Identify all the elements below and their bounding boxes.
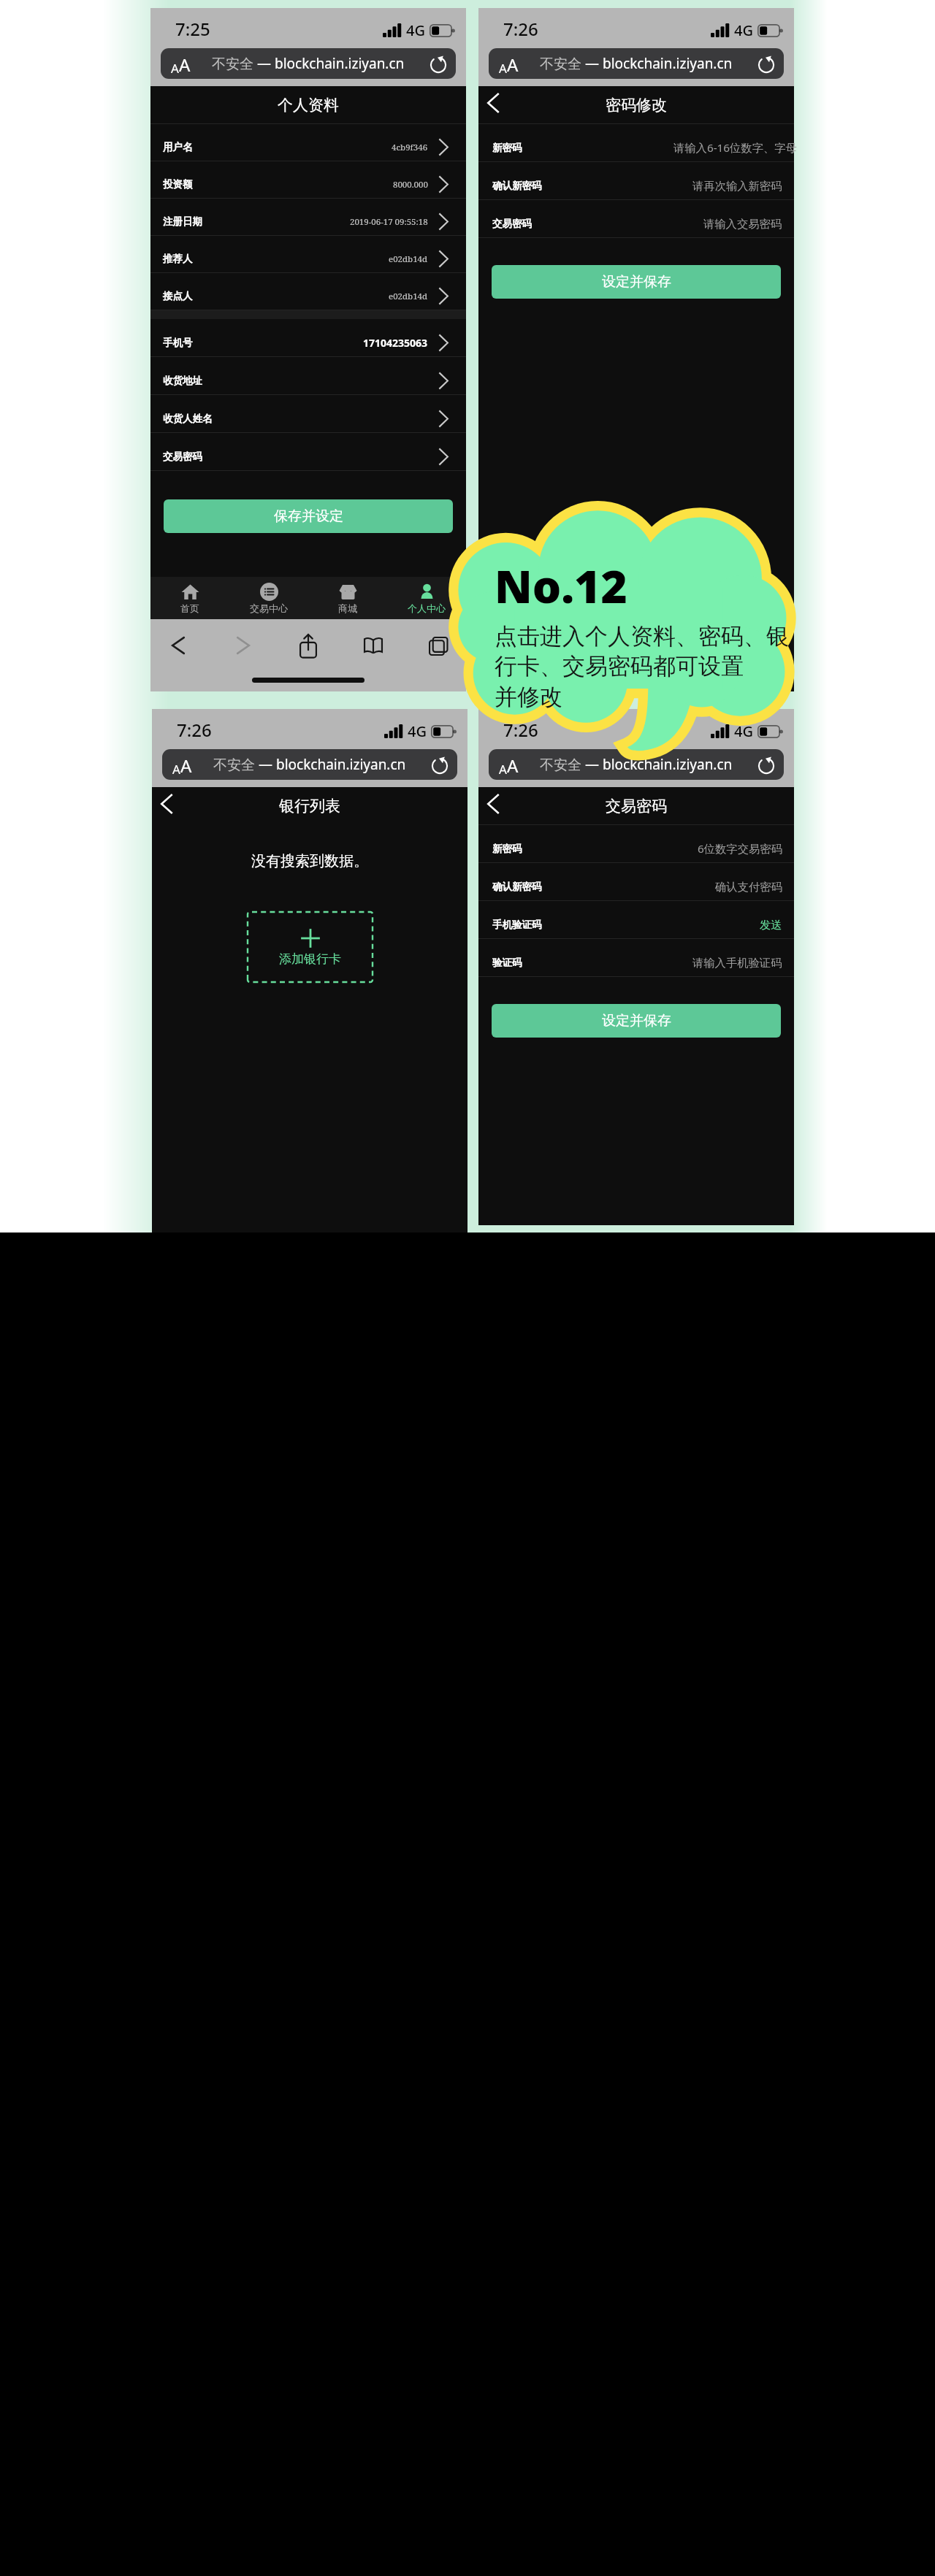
staticText: 添加银行卡 [279, 951, 341, 967]
staticText: A [180, 754, 192, 778]
button[interactable]: 设定并保存 [492, 1004, 781, 1038]
staticText: 7:25 [175, 17, 210, 41]
button[interactable]: 添加银行卡 [248, 912, 373, 982]
staticText: 手机验证码 [492, 919, 542, 931]
button[interactable]: 个人中心 [387, 577, 466, 619]
staticText: A [179, 53, 191, 77]
staticText: — blockchain.iziyan.cn [585, 54, 733, 73]
button[interactable]: A [161, 48, 456, 79]
staticText: 用户名 [163, 141, 193, 153]
staticText: 商城 [338, 602, 357, 614]
staticText: 7:26 [177, 718, 212, 742]
staticText: 新密码 [492, 843, 522, 855]
staticText: e02db14d [389, 253, 428, 265]
staticText: 请输入6-16位数字、字母 [673, 140, 797, 156]
staticText: e02db14d [389, 291, 428, 302]
staticText: 个人中心 [408, 602, 446, 614]
button[interactable]: 首页 [150, 577, 229, 619]
button[interactable]: 手机验证码 [478, 901, 794, 939]
staticText: 交易密码 [492, 218, 532, 230]
button[interactable]: 收货人姓名 [150, 395, 466, 433]
staticText: 设定并保存 [602, 1012, 671, 1030]
staticText: 7:26 [503, 17, 538, 41]
staticText: 个人资料 [278, 96, 339, 115]
button[interactable]: 保存并设定 [164, 499, 453, 533]
button[interactable]: Back [159, 626, 197, 664]
staticText: 2019-06-17 09:55:18 [350, 216, 428, 228]
button[interactable]: Share [289, 626, 327, 664]
button[interactable]: Back [153, 790, 180, 818]
button[interactable]: Bookmarks [354, 626, 392, 664]
button[interactable]: A [162, 749, 457, 780]
button[interactable]: 设定并保存 [492, 265, 781, 299]
button[interactable]: 投资额 [150, 161, 466, 199]
staticText: 确认新密码 [492, 180, 542, 192]
staticText: — blockchain.iziyan.cn [257, 54, 405, 73]
staticText: 请输入交易密码 [703, 217, 782, 231]
button[interactable]: 交易密码 [150, 433, 466, 471]
button[interactable]: 收货地址 [150, 357, 466, 395]
staticText: — blockchain.iziyan.cn [259, 755, 406, 774]
staticText: 验证码 [492, 957, 522, 969]
staticText: 手机号 [163, 337, 193, 349]
button[interactable]: 接点人 [150, 273, 466, 310]
staticText: 注册日期 [163, 215, 202, 228]
button[interactable]: A [489, 749, 784, 780]
staticText: 保存并设定 [274, 507, 343, 525]
button[interactable]: 确认新密码 [478, 863, 794, 901]
staticText: 4cb9f346 [392, 142, 428, 153]
staticText: 请再次输入新密码 [692, 179, 782, 193]
button[interactable]: 确认新密码 [478, 162, 794, 200]
button[interactable]: 用户名 [150, 124, 466, 161]
staticText: — blockchain.iziyan.cn [585, 755, 733, 774]
staticText: 4G [734, 20, 753, 40]
button[interactable]: Back [479, 790, 507, 818]
staticText: 点击进入个人资料、密码、银 行卡、交易密码都可设置 并修改 [495, 622, 789, 712]
staticText: 不安全 [540, 755, 585, 774]
button[interactable]: A [489, 48, 784, 79]
button[interactable]: 新密码 [478, 124, 794, 162]
staticText: 首页 [180, 602, 199, 614]
button[interactable]: Tabs [419, 626, 457, 664]
staticText: A [171, 60, 179, 77]
staticText: 确认新密码 [492, 881, 542, 893]
staticText: 不安全 [212, 54, 257, 73]
button[interactable]: 注册日期 [150, 199, 466, 236]
staticText: 接点人 [163, 290, 193, 302]
staticText: 不安全 [213, 755, 259, 774]
button[interactable]: 交易中心 [229, 577, 308, 619]
button[interactable]: 推荐人 [150, 236, 466, 273]
staticText: 确认支付密码 [715, 880, 782, 894]
staticText: A [172, 761, 180, 778]
staticText: 交易密码 [163, 451, 202, 463]
staticText: 没有搜索到数据。 [152, 852, 467, 870]
button[interactable]: Forward [224, 626, 262, 664]
button[interactable]: 手机号 [150, 319, 466, 357]
button[interactable]: Reload [756, 53, 776, 74]
button[interactable]: 新密码 [478, 825, 794, 863]
staticText: 发送 [760, 918, 782, 932]
staticText: No.12 [495, 555, 627, 616]
button[interactable]: Reload [428, 53, 449, 74]
staticText: A [507, 53, 519, 77]
button[interactable]: 验证码 [478, 939, 794, 977]
button[interactable]: 交易密码 [478, 200, 794, 238]
staticText: 4G [408, 721, 427, 741]
staticText: A [499, 761, 507, 778]
staticText: 4G [406, 20, 425, 40]
staticText: 密码修改 [606, 96, 667, 115]
button[interactable]: Reload [430, 754, 450, 775]
staticText: A [499, 60, 507, 77]
staticText: 请输入手机验证码 [692, 956, 782, 970]
staticText: 设定并保存 [602, 273, 671, 291]
staticText: 新密码 [492, 142, 522, 154]
staticText: 收货人姓名 [163, 413, 213, 425]
button[interactable]: Back [479, 89, 507, 117]
staticText: 不安全 [540, 54, 585, 73]
staticText: 7:26 [503, 718, 538, 742]
button[interactable]: 商城 [308, 577, 387, 619]
staticText: 收货地址 [163, 375, 202, 387]
staticText: 4G [734, 721, 753, 741]
staticText: 6位数字交易密码 [698, 841, 782, 856]
button[interactable]: Reload [756, 754, 776, 775]
